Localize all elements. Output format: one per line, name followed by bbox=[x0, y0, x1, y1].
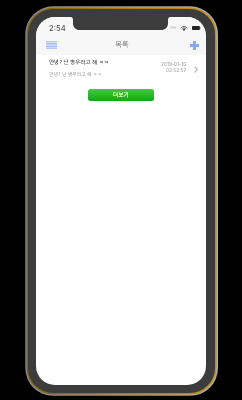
staticText: 더보기 bbox=[113, 92, 129, 98]
staticText: 2019-01-10 bbox=[161, 61, 187, 67]
staticText: 2:54 bbox=[49, 24, 66, 33]
staticText: 02:52:57 bbox=[166, 67, 187, 73]
staticText: 목록 bbox=[115, 41, 129, 48]
button[interactable]: Add bbox=[185, 36, 203, 54]
button[interactable]: 더보기 bbox=[88, 89, 154, 101]
button[interactable]: Menu bbox=[41, 36, 62, 54]
staticText: 안녕? 난 병우라고 해 ㅋㅋ bbox=[49, 59, 109, 64]
staticText: 안녕? 난 병우라고 해 ㅋㅋ bbox=[49, 72, 102, 77]
button[interactable] bbox=[36, 55, 206, 84]
